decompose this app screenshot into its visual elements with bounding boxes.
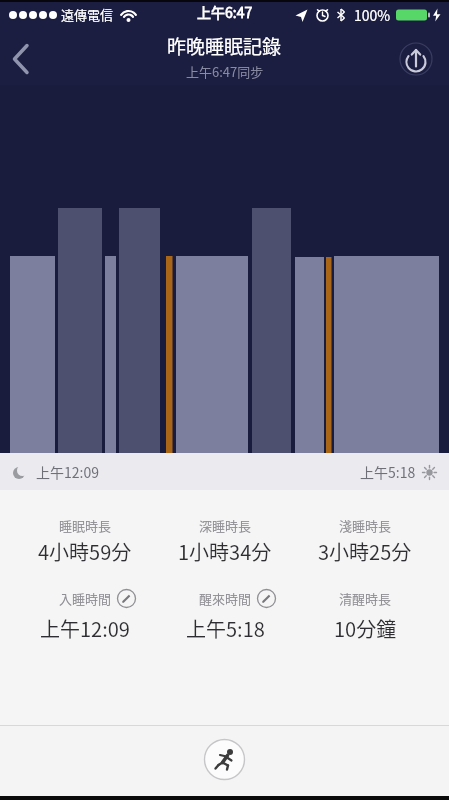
- button[interactable]: 入睡時間: [15, 589, 155, 608]
- staticText: 上午12:09: [40, 614, 130, 643]
- staticText: 清醒時長: [339, 589, 392, 608]
- staticText: 10分鐘: [334, 614, 397, 643]
- button[interactable]: [399, 42, 433, 76]
- staticText: 上午6:47同步: [186, 62, 264, 81]
- staticText: 遠傳電信: [61, 5, 114, 24]
- staticText: 深睡時長: [199, 516, 252, 535]
- button[interactable]: [204, 739, 245, 780]
- staticText: 昨晚睡眠記錄: [167, 32, 282, 60]
- staticText: 3小時25分: [318, 537, 412, 566]
- staticText: 1小時34分: [178, 537, 272, 566]
- staticText: 上午6:47: [197, 2, 253, 22]
- staticText: 淺睡時長: [339, 516, 392, 535]
- staticText: 入睡時間: [59, 589, 112, 608]
- button[interactable]: 醒來時間: [155, 589, 295, 608]
- staticText: 上午12:09: [36, 462, 99, 482]
- staticText: 上午5:18: [360, 462, 416, 482]
- button[interactable]: [0, 30, 42, 88]
- staticText: 4小時59分: [38, 537, 132, 566]
- staticText: 睡眠時長: [59, 516, 112, 535]
- staticText: 上午5:18: [186, 614, 265, 643]
- staticText: 醒來時間: [199, 589, 252, 608]
- staticText: 100%: [354, 5, 391, 25]
